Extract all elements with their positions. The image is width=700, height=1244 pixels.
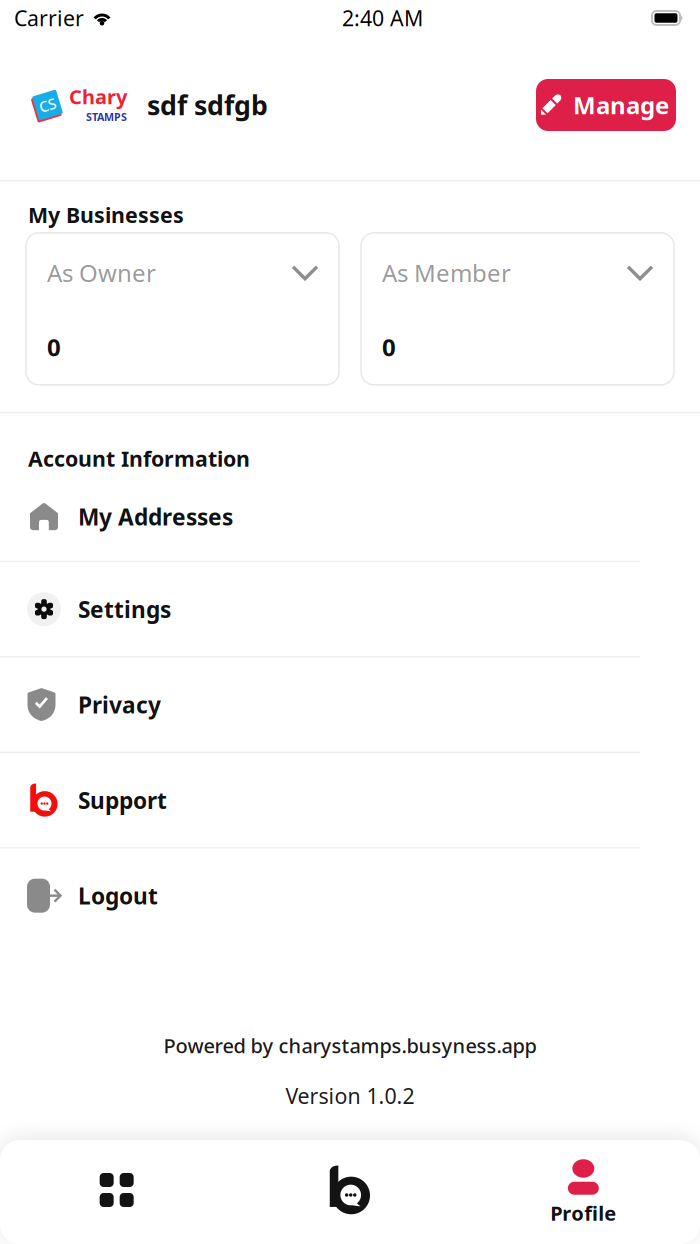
staticText: Version 1.0.2 [285, 1082, 414, 1110]
button[interactable]: As Owner [26, 233, 339, 385]
button[interactable]: As Member [361, 233, 674, 385]
staticText: As Member [382, 257, 511, 289]
button[interactable]: Support [0, 753, 700, 847]
staticText: Settings [78, 594, 171, 624]
button[interactable]: Privacy [0, 658, 700, 752]
staticText: Chary [69, 83, 127, 110]
staticText: As Owner [47, 257, 156, 289]
staticText: 0 [47, 331, 61, 363]
button[interactable]: Settings [0, 562, 700, 656]
button[interactable]: My Addresses [0, 473, 700, 561]
button[interactable]: Businesses [233, 1140, 467, 1244]
staticText: Manage [573, 89, 669, 121]
staticText: 0 [382, 331, 396, 363]
button[interactable]: Dashboard [0, 1140, 233, 1244]
staticText: Carrier [14, 4, 84, 32]
button[interactable]: Profile [467, 1141, 700, 1242]
staticText: CS [39, 95, 56, 115]
button[interactable]: Manage [536, 79, 676, 131]
staticText: Privacy [78, 690, 161, 720]
staticText: Logout [78, 881, 158, 911]
staticText: 2:40 AM [342, 4, 423, 32]
staticText: My Businesses [28, 200, 184, 229]
staticText: STAMPS [86, 110, 127, 124]
staticText: Profile [550, 1200, 616, 1226]
staticText: sdf sdfgb [147, 87, 268, 123]
staticText: Account Information [28, 444, 250, 473]
staticText: Support [78, 785, 167, 815]
staticText: My Addresses [78, 502, 233, 532]
button[interactable]: Logout [0, 849, 700, 943]
staticText: Powered by charystamps.busyness.app [163, 1032, 536, 1059]
